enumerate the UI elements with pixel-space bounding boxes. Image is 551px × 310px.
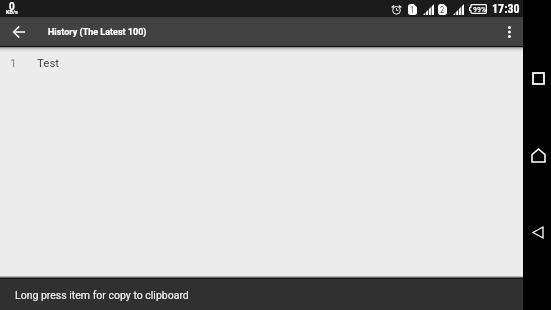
staticText: Test [37,56,60,69]
button[interactable]: 1 [0,52,523,72]
button[interactable]: Home [524,141,551,169]
staticText: 1 [10,56,17,69]
button[interactable]: Back [524,218,551,246]
staticText: History (The Latest 100) [48,27,147,38]
staticText: Long press item for copy to clipboard [15,289,189,301]
staticText: 17:30 [492,2,520,16]
staticText: 0 [9,1,15,13]
staticText: 2 [440,5,445,15]
button[interactable]: More options [495,17,523,47]
staticText: KB/s [6,9,18,14]
staticText: 1 [410,5,415,15]
button[interactable]: Recent apps [524,64,551,92]
button[interactable]: Navigate up [0,17,38,47]
staticText: 99% [473,5,486,14]
